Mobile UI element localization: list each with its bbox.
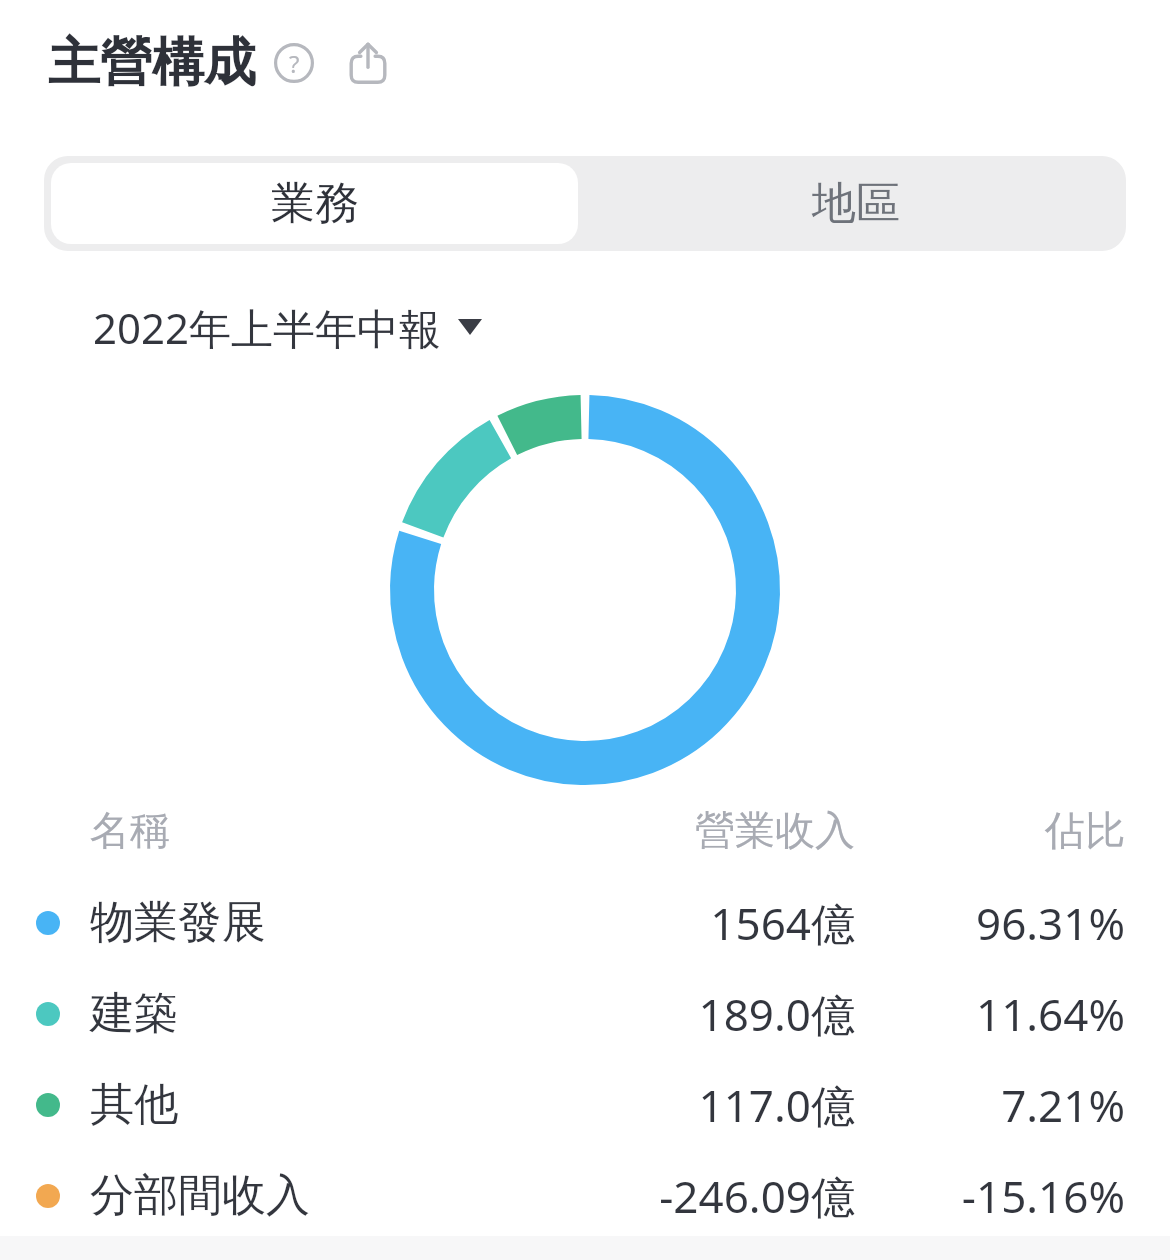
staticText: 其他 — [90, 1077, 560, 1132]
staticText: 營業收入 — [560, 805, 855, 855]
staticText: 189.0億 — [560, 984, 855, 1044]
staticText: 名稱 — [90, 805, 560, 855]
staticText: 業務 — [271, 176, 359, 231]
other: 主營構成圓餅圖 — [390, 395, 780, 785]
staticText: 地區 — [812, 176, 900, 231]
button[interactable]: 建築 — [0, 968, 1170, 1059]
button[interactable]: Help — [272, 41, 316, 85]
staticText: 佔比 — [855, 805, 1125, 855]
staticText: 主營構成 — [48, 30, 256, 96]
staticText: 2022年上半年中報 — [93, 299, 442, 356]
button[interactable]: 業務 — [51, 163, 578, 244]
button[interactable]: 分部間收入 — [0, 1150, 1170, 1241]
staticText: 96.31% — [855, 893, 1125, 953]
staticText: 11.64% — [855, 984, 1125, 1044]
staticText: -246.09億 — [560, 1166, 855, 1226]
button[interactable]: 2022年上半年中報 — [45, 294, 518, 360]
staticText: 1564億 — [560, 893, 855, 953]
button[interactable]: Share — [344, 39, 392, 87]
staticText: 7.21% — [855, 1075, 1125, 1135]
staticText: 建築 — [90, 986, 560, 1041]
button[interactable]: 地區 — [585, 156, 1126, 251]
staticText: ? — [289, 47, 300, 80]
button[interactable]: 物業發展 — [0, 877, 1170, 968]
button[interactable]: 其他 — [0, 1059, 1170, 1150]
staticText: 物業發展 — [90, 895, 560, 950]
staticText: 117.0億 — [560, 1075, 855, 1135]
staticText: -15.16% — [855, 1166, 1125, 1226]
staticText: 分部間收入 — [90, 1168, 560, 1223]
